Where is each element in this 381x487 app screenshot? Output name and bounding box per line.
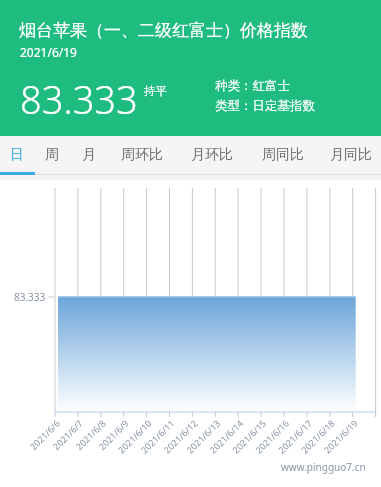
- staticText: 周: [45, 146, 59, 164]
- button[interactable]: 周环比: [114, 136, 170, 174]
- staticText: 种类：红富士: [215, 78, 290, 94]
- staticText: 月同比: [330, 146, 372, 164]
- staticText: 月环比: [191, 146, 233, 164]
- button[interactable]: 月环比: [184, 136, 240, 174]
- staticText: 烟台苹果（一、二级红富士）价格指数: [19, 20, 308, 41]
- staticText: 类型：日定基指数: [215, 98, 315, 114]
- staticText: 日: [10, 146, 24, 164]
- button[interactable]: 日: [3, 136, 31, 174]
- staticText: 持平: [144, 84, 167, 98]
- staticText: 2021/6/19: [20, 44, 77, 60]
- staticText: 周环比: [121, 146, 163, 164]
- button[interactable]: 月: [75, 136, 103, 174]
- button[interactable]: 周: [38, 136, 66, 174]
- button[interactable]: 月同比: [323, 136, 379, 174]
- staticText: 周同比: [262, 146, 304, 164]
- button[interactable]: 周同比: [255, 136, 311, 174]
- staticText: 月: [82, 146, 96, 164]
- staticText: 83.333: [20, 73, 138, 125]
